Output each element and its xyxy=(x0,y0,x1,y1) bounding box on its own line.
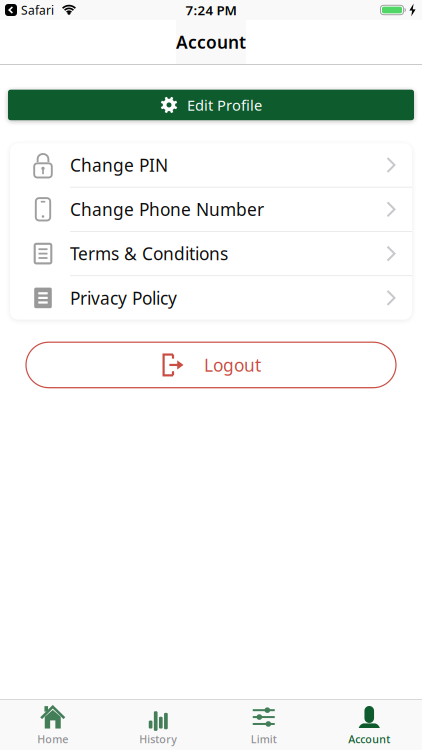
button[interactable]: Back to Safari xyxy=(5,2,54,18)
button[interactable]: Home xyxy=(0,699,105,750)
staticText: History xyxy=(139,732,177,746)
button[interactable]: Terms & Conditions xyxy=(10,232,412,275)
staticText: Home xyxy=(37,732,68,746)
button[interactable]: Change Phone Number xyxy=(10,187,412,231)
button[interactable]: Privacy Policy xyxy=(10,276,412,320)
staticText: Limit xyxy=(251,732,277,746)
staticText: Change PIN xyxy=(70,153,168,176)
staticText: Logout xyxy=(204,353,261,376)
staticText: Safari xyxy=(21,2,54,18)
staticText: 7:24 PM xyxy=(185,1,236,19)
staticText: Terms & Conditions xyxy=(70,242,228,265)
button[interactable]: Logout xyxy=(26,342,396,388)
button[interactable]: Change PIN xyxy=(10,143,412,187)
button[interactable]: Account xyxy=(316,699,422,750)
staticText: Account xyxy=(176,30,246,53)
staticText: Privacy Policy xyxy=(70,286,177,309)
staticText: Account xyxy=(348,732,390,746)
button[interactable]: History xyxy=(105,699,211,750)
staticText: Edit Profile xyxy=(187,95,262,115)
button[interactable]: Limit xyxy=(211,699,316,750)
button[interactable]: Edit Profile xyxy=(8,90,414,120)
staticText: Change Phone Number xyxy=(70,198,264,221)
